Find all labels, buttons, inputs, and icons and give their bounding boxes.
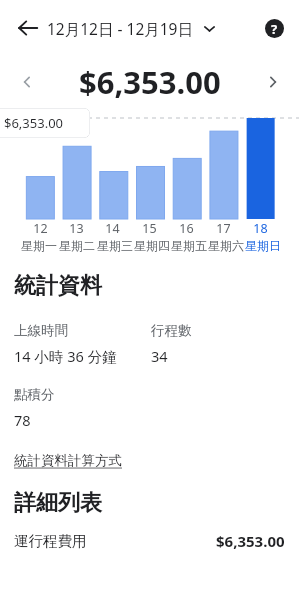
staticText: 星期六 (208, 238, 244, 253)
button[interactable]: 12月12日 - 12月19日 (47, 18, 216, 39)
staticText: 行程數 (151, 322, 192, 339)
staticText: $6,353.00 (216, 531, 285, 551)
staticText: 統計資料 (14, 272, 102, 300)
staticText: 14 (105, 220, 120, 237)
staticText: 12 (33, 220, 48, 237)
button[interactable]: 運行程費用 (14, 531, 285, 551)
button[interactable]: 統計資料計算方式 (14, 452, 122, 469)
staticText: 34 (151, 346, 168, 366)
staticText: 15 (142, 220, 157, 237)
staticText: $6,353.00 (4, 114, 64, 132)
staticText: 星期四 (134, 238, 170, 253)
button[interactable]: Previous week (12, 67, 42, 97)
staticText: 12月12日 - 12月19日 (47, 18, 193, 39)
button[interactable]: Next week (258, 67, 288, 97)
button[interactable]: Help (254, 8, 294, 48)
staticText: 78 (14, 410, 31, 430)
staticText: 星期三 (97, 238, 133, 253)
staticText: 17 (216, 220, 231, 237)
staticText: $6,353.00 (79, 61, 221, 103)
staticText: 16 (179, 220, 194, 237)
button[interactable]: Back (6, 6, 50, 50)
staticText: 運行程費用 (14, 532, 87, 550)
staticText: 星期二 (59, 238, 95, 253)
staticText: 13 (69, 220, 84, 237)
staticText: 統計資料計算方式 (14, 452, 122, 469)
staticText: ? (271, 20, 278, 38)
staticText: 點積分 (14, 386, 55, 403)
staticText: 14 小時 36 分鐘 (14, 346, 117, 366)
staticText: 上線時間 (14, 322, 68, 339)
staticText: 星期日 (245, 238, 281, 253)
staticText: 星期五 (171, 238, 207, 253)
staticText: 18 (253, 220, 268, 237)
staticText: 星期一 (21, 238, 57, 253)
staticText: 詳細列表 (14, 489, 102, 517)
